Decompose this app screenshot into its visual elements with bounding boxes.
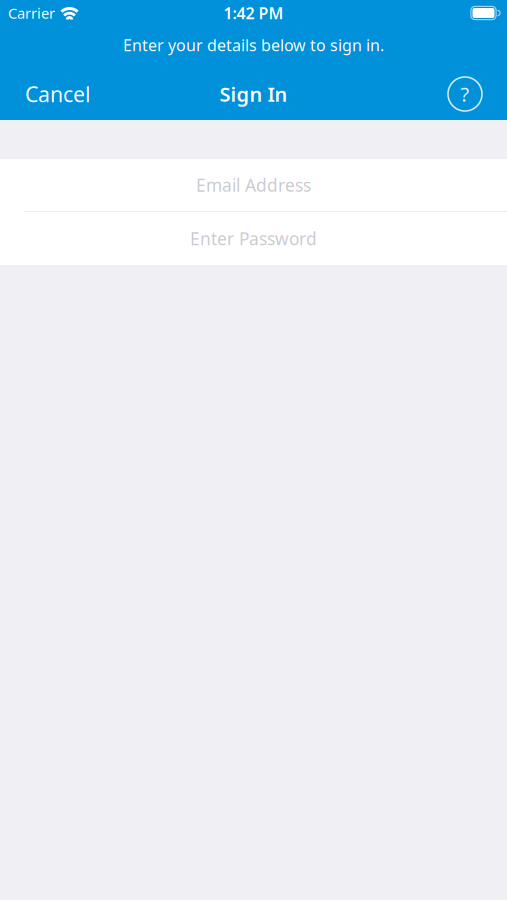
staticText: Enter your details below to sign in.: [123, 34, 384, 56]
button[interactable]: Enter Password: [0, 212, 507, 265]
staticText: Email Address: [196, 173, 311, 196]
staticText: Cancel: [25, 80, 91, 108]
staticText: 1:42 PM: [223, 2, 283, 24]
staticText: Enter Password: [190, 227, 317, 250]
staticText: ?: [460, 81, 469, 107]
button[interactable]: Help: [443, 72, 487, 116]
button[interactable]: Cancel: [0, 72, 105, 116]
staticText: Carrier: [8, 3, 55, 23]
button[interactable]: Email Address: [0, 159, 507, 211]
staticText: Sign In: [219, 81, 287, 107]
